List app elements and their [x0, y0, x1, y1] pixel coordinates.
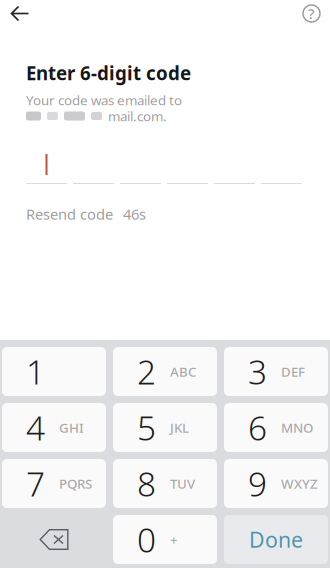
button[interactable]: 3 — [224, 347, 328, 396]
staticText: Done — [249, 525, 303, 554]
staticText: TUV — [170, 475, 195, 492]
staticText: ? — [308, 4, 315, 23]
button[interactable]: 6 — [224, 403, 328, 452]
staticText: 46s — [123, 204, 146, 224]
button[interactable]: 0 — [113, 515, 217, 564]
staticText: MNO — [281, 419, 313, 436]
button[interactable]: 1 — [2, 347, 106, 396]
staticText: 7 — [26, 461, 45, 506]
staticText: 8 — [137, 461, 156, 506]
staticText: JKL — [170, 419, 189, 436]
button[interactable]: Done — [224, 515, 328, 564]
button[interactable]: 7 — [2, 459, 106, 508]
button[interactable]: Help — [302, 0, 330, 27]
staticText: Resend code — [26, 204, 113, 224]
button[interactable]: Back — [0, 0, 40, 27]
staticText: 0 — [137, 517, 156, 562]
staticText: PQRS — [59, 475, 92, 492]
staticText: ABC — [170, 363, 196, 380]
button[interactable]: 8 — [113, 459, 217, 508]
staticText: GHI — [59, 419, 84, 436]
button[interactable]: 2 — [113, 347, 217, 396]
staticText: 9 — [248, 461, 267, 506]
button[interactable]: 4 — [2, 403, 106, 452]
staticText: 5 — [137, 405, 156, 450]
button[interactable]: 9 — [224, 459, 328, 508]
staticText: mail.com. — [108, 107, 167, 125]
staticText: Enter 6-digit code — [26, 61, 191, 85]
button[interactable]: 5 — [113, 403, 217, 452]
staticText: + — [170, 531, 178, 548]
staticText: Your code was emailed to — [26, 91, 182, 109]
button[interactable]: Resend code — [26, 201, 146, 227]
button[interactable]: Delete — [2, 515, 106, 564]
staticText: 3 — [248, 349, 267, 394]
staticText: 1 — [26, 349, 45, 394]
staticText: DEF — [281, 363, 305, 380]
staticText: WXYZ — [281, 475, 318, 492]
staticText: 4 — [26, 405, 45, 450]
staticText: 2 — [137, 349, 156, 394]
staticText: 6 — [248, 405, 267, 450]
